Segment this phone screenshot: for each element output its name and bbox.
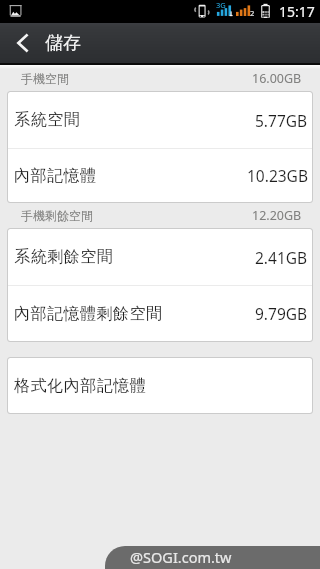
staticText: 3G [216,0,226,10]
staticText: 10.23GB [247,165,308,186]
staticText: 手機空間 [21,71,69,86]
staticText: 15:17 [279,2,315,21]
staticText: 格式化內部記憶體 [14,376,146,396]
staticText: 內部記憶體剩餘空間 [14,304,163,324]
staticText: 12.20GB [252,207,302,224]
button[interactable]: Back [0,23,44,63]
button[interactable]: 格式化內部記憶體 [8,358,312,413]
staticText: 系統剩餘空間 [14,247,113,267]
staticText: 內部記憶體 [14,166,97,186]
staticText: 儲存 [45,32,81,55]
staticText: 5.77GB [255,110,308,131]
staticText: @SOGI.com.tw [130,547,232,567]
staticText: 手機剩餘空間 [21,208,93,223]
button[interactable]: 內部記憶體剩餘空間 [8,286,312,341]
staticText: 2.41GB [255,247,308,268]
staticText: 16.00GB [252,70,302,87]
staticText: 9.79GB [255,303,308,324]
button[interactable]: 內部記憶體 [8,149,312,202]
button[interactable]: 系統空間 [8,92,312,148]
staticText: 系統空間 [14,110,80,130]
staticText: 2 [250,8,255,18]
button[interactable]: 系統剩餘空間 [8,229,312,285]
